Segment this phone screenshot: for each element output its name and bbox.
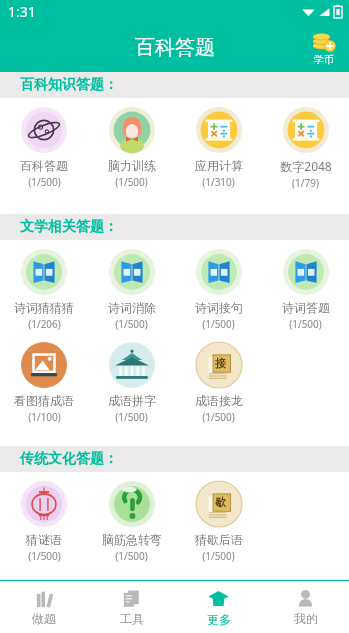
- button[interactable]: 诗词消除: [88, 245, 175, 335]
- button[interactable]: 数字2048: [262, 103, 349, 194]
- staticText: 诗词接句: [195, 300, 243, 315]
- button[interactable]: 应用计算: [175, 103, 262, 193]
- staticText: 看图猜成语: [14, 393, 74, 408]
- staticText: 数字2048: [280, 158, 332, 174]
- staticText: 我的: [294, 611, 318, 626]
- staticText: 百科答题: [135, 35, 215, 60]
- button[interactable]: 更多: [175, 581, 262, 633]
- staticText: 脑筋急转弯: [102, 532, 162, 547]
- staticText: (1/79): [292, 176, 319, 190]
- button[interactable]: 诗词答题: [262, 245, 349, 335]
- staticText: (1/500): [28, 175, 61, 189]
- staticText: (1/500): [202, 549, 235, 563]
- button[interactable]: 工具: [88, 581, 175, 633]
- staticText: 接: [215, 356, 226, 370]
- staticText: 应用计算: [195, 158, 243, 173]
- button[interactable]: 做题: [0, 581, 88, 633]
- button[interactable]: 歇: [175, 477, 262, 567]
- staticText: (1/500): [202, 317, 235, 331]
- button[interactable]: 脑力训练: [88, 103, 175, 193]
- button[interactable]: 脑筋急转弯: [88, 477, 175, 567]
- staticText: (1/206): [28, 317, 61, 331]
- staticText: 歇: [215, 495, 226, 509]
- button[interactable]: 接: [175, 338, 262, 428]
- staticText: (1/500): [289, 317, 322, 331]
- staticText: 文学相关答题：: [20, 218, 118, 236]
- staticText: 学币: [314, 53, 334, 66]
- button[interactable]: 诗词接句: [175, 245, 262, 335]
- button[interactable]: 看图猜成语: [0, 338, 88, 428]
- staticText: (1/500): [28, 549, 61, 563]
- staticText: (1/500): [202, 410, 235, 424]
- staticText: 猜谜语: [26, 532, 62, 547]
- staticText: 成语拼字: [108, 393, 156, 408]
- staticText: 1:31: [8, 2, 36, 21]
- staticText: 百科答题: [20, 158, 68, 173]
- button[interactable]: 成语拼字: [88, 338, 175, 428]
- staticText: 更多: [207, 612, 231, 627]
- button[interactable]: 我的: [262, 581, 349, 633]
- staticText: 诗词消除: [108, 300, 156, 315]
- staticText: 传统文化答题：: [20, 450, 118, 468]
- staticText: 诗词猜猜猜: [14, 300, 74, 315]
- staticText: 做题: [32, 611, 56, 626]
- staticText: 脑力训练: [108, 158, 156, 173]
- button[interactable]: 学币: [308, 28, 339, 66]
- button[interactable]: 百科答题: [0, 103, 88, 193]
- staticText: 百科知识答题：: [20, 76, 118, 94]
- staticText: (1/500): [115, 175, 148, 189]
- staticText: (1/500): [115, 410, 148, 424]
- staticText: 猜歇后语: [195, 532, 243, 547]
- button[interactable]: 猜谜语: [0, 477, 88, 567]
- button[interactable]: 诗词猜猜猜: [0, 245, 88, 335]
- staticText: (1/500): [115, 549, 148, 563]
- staticText: 工具: [120, 611, 144, 626]
- staticText: 诗词答题: [282, 300, 330, 315]
- staticText: 成语接龙: [195, 393, 243, 408]
- staticText: (1/100): [28, 410, 61, 424]
- staticText: (1/500): [115, 317, 148, 331]
- staticText: (1/310): [202, 175, 235, 189]
